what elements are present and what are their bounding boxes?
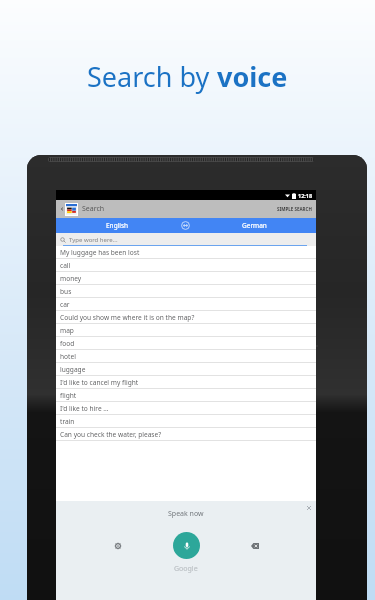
button[interactable]: car [56, 298, 316, 311]
staticText: Speak now [168, 509, 204, 519]
button[interactable]: Swap languages [178, 218, 193, 233]
staticText: car [60, 300, 70, 309]
button[interactable]: Delete [244, 535, 266, 557]
staticText: Search [82, 204, 105, 214]
staticText: My luggage has been lost [60, 248, 140, 257]
staticText: call [60, 261, 71, 270]
button[interactable]: Could you show me where it is on the map… [56, 311, 316, 324]
staticText: voice [217, 58, 288, 95]
staticText: Type word here... [69, 236, 118, 244]
button[interactable]: Settings [107, 535, 129, 557]
staticText: flight [60, 391, 77, 400]
staticText: Google [174, 564, 198, 574]
button[interactable]: German [193, 218, 316, 233]
staticText: map [60, 326, 74, 335]
staticText: train [60, 417, 75, 426]
staticText: luggage [60, 365, 86, 374]
staticText: hotel [60, 352, 76, 361]
button[interactable]: SIMPLE SEARCH [277, 206, 312, 212]
staticText: I'd like to hire ... [60, 404, 109, 413]
staticText: English [106, 221, 129, 230]
button[interactable]: My luggage has been lost [56, 246, 316, 259]
staticText: Search by [87, 58, 217, 95]
button[interactable]: luggage [56, 363, 316, 376]
button[interactable]: English [56, 218, 178, 233]
button[interactable]: map [56, 324, 316, 337]
button[interactable]: bus [56, 285, 316, 298]
staticText: Could you show me where it is on the map… [60, 313, 195, 322]
button[interactable]: hotel [56, 350, 316, 363]
button[interactable]: flight [56, 389, 316, 402]
staticText: money [60, 274, 82, 283]
button[interactable]: I'd like to cancel my flight [56, 376, 316, 389]
button[interactable]: money [56, 272, 316, 285]
button[interactable]: Can you check the water, please? [56, 428, 316, 441]
button[interactable]: food [56, 337, 316, 350]
button[interactable]: Speak [173, 532, 200, 559]
button[interactable]: call [56, 259, 316, 272]
button[interactable]: train [56, 415, 316, 428]
staticText: I'd like to cancel my flight [60, 378, 139, 387]
staticText: German [242, 221, 267, 230]
staticText: SIMPLE SEARCH [277, 206, 312, 212]
staticText: Can you check the water, please? [60, 430, 162, 439]
staticText: bus [60, 287, 72, 296]
button[interactable]: I'd like to hire ... [56, 402, 316, 415]
button[interactable]: Close [305, 504, 313, 512]
staticText: food [60, 339, 75, 348]
staticText: 12:18 [298, 192, 313, 199]
button[interactable]: Type word here... [56, 233, 316, 246]
